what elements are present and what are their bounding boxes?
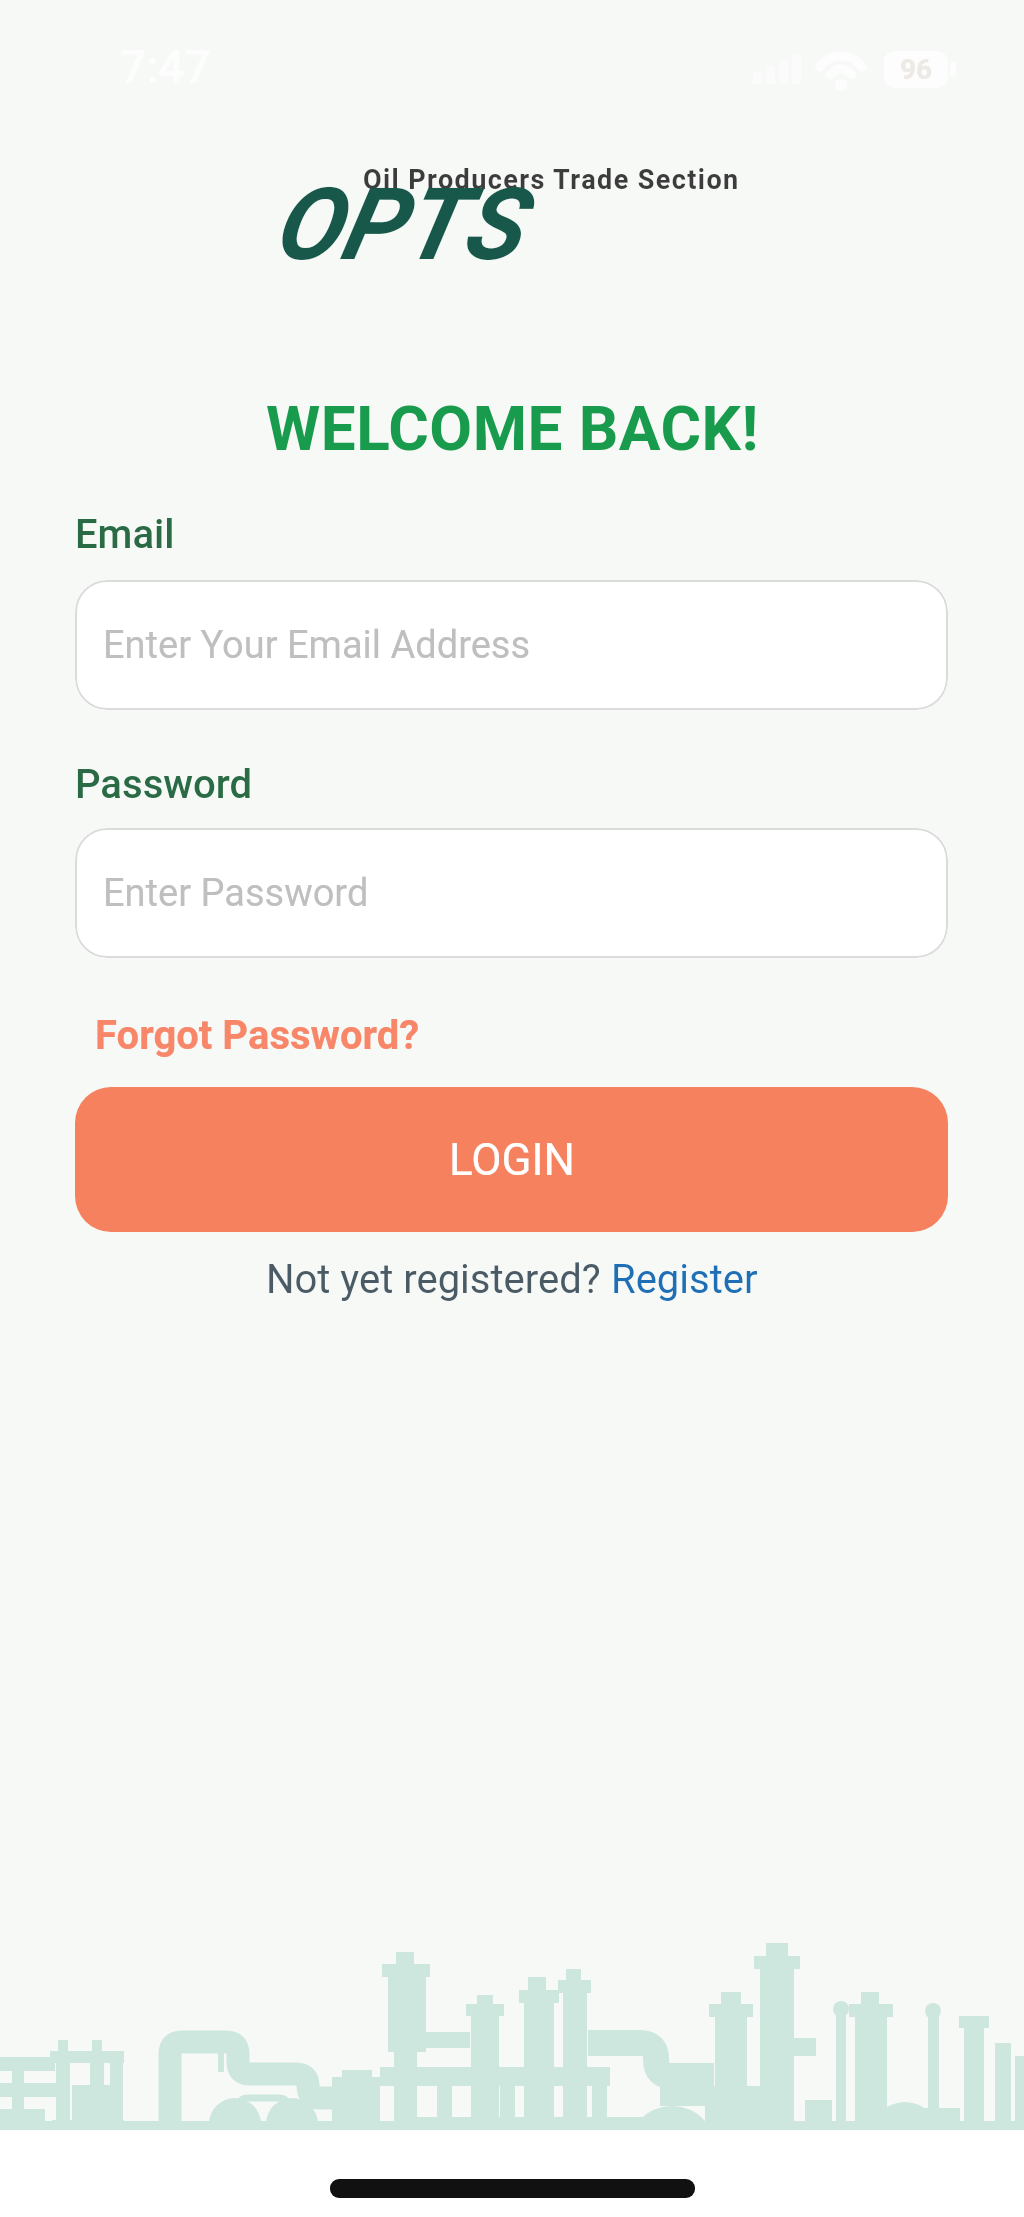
staticText: 96 <box>900 53 933 86</box>
staticText: Email <box>75 511 175 558</box>
staticText: Not yet registered? <box>266 1256 611 1303</box>
button[interactable]: LOGIN <box>75 1087 948 1232</box>
staticText: Enter Your Email Address <box>103 623 531 668</box>
staticText: OPTS <box>272 166 521 283</box>
staticText: Enter Password <box>103 871 369 916</box>
staticText: Oil Producers Trade Section <box>363 164 740 196</box>
button[interactable]: Enter Password <box>75 828 948 958</box>
staticText: LOGIN <box>449 1134 575 1186</box>
staticText: Password <box>75 761 253 808</box>
button[interactable]: Enter Your Email Address <box>75 580 948 710</box>
button[interactable]: Register <box>611 1256 758 1303</box>
staticText: WELCOME BACK! <box>266 392 759 465</box>
